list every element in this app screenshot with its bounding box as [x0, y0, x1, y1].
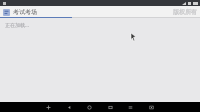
button[interactable]: 正在加载… — [5, 22, 29, 29]
button[interactable]: App icon — [0, 8, 41, 16]
button[interactable]: Menu — [126, 102, 135, 112]
button[interactable]: Back — [65, 102, 74, 112]
staticText: 版权所有 — [173, 8, 197, 16]
button[interactable]: Screenshot — [147, 102, 156, 112]
button[interactable]: Volume down — [44, 102, 53, 112]
other: App icon — [3, 9, 10, 16]
staticText: 正在加载… — [5, 22, 29, 29]
staticText: 考试考场 — [13, 8, 37, 16]
button[interactable]: Recent apps — [106, 102, 115, 112]
button[interactable]: Home — [85, 102, 94, 112]
